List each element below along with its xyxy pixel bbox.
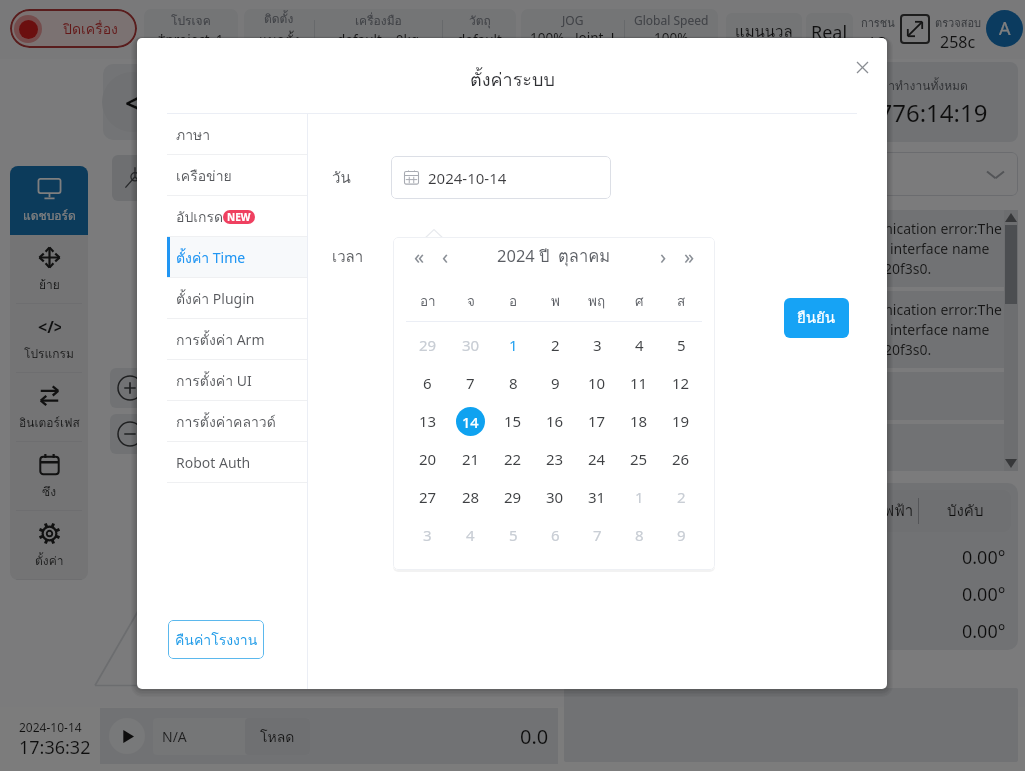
button[interactable]: Next year: [676, 243, 702, 269]
button[interactable]: อินเตอร์เฟส: [10, 373, 88, 442]
button[interactable]: 3: [406, 516, 449, 554]
button[interactable]: แมนนวล: [726, 13, 802, 51]
button[interactable]: 17: [576, 402, 618, 440]
button[interactable]: Play: [109, 718, 145, 754]
button[interactable]: Account: [986, 10, 1023, 47]
button[interactable]: 16: [534, 402, 576, 440]
staticText: 3: [423, 525, 432, 545]
button[interactable]: 13: [406, 402, 449, 440]
button[interactable]: Real: [806, 13, 853, 51]
button[interactable]: Previous year: [406, 243, 432, 269]
button[interactable]: 2024-10-14: [391, 156, 611, 199]
staticText: 5: [509, 525, 518, 545]
button[interactable]: ติดตั้ง: [244, 9, 516, 56]
button[interactable]: 30: [449, 326, 492, 364]
button[interactable]: 20: [406, 440, 449, 478]
button[interactable]: ตั้งค่า Time: [167, 237, 307, 278]
button[interactable]: JOG: [521, 9, 718, 56]
button[interactable]: ตั้งค่า Plugin: [167, 278, 307, 319]
button[interactable]: 18: [618, 402, 660, 440]
staticText: 6: [551, 525, 560, 545]
button[interactable]: 23: [534, 440, 576, 478]
button[interactable]: 28: [449, 478, 492, 516]
button[interactable]: อัปเกรด: [167, 196, 307, 237]
staticText: ย้าย: [39, 275, 60, 294]
button[interactable]: 7: [576, 516, 618, 554]
button[interactable]: 31: [576, 478, 618, 516]
button[interactable]: 19: [660, 402, 702, 440]
staticText: เวลา: [332, 245, 364, 269]
button[interactable]: 2: [660, 478, 702, 516]
staticText: จ: [467, 290, 475, 311]
button[interactable]: 29: [406, 326, 449, 364]
staticText: โหลด: [260, 726, 295, 748]
button[interactable]: 4: [618, 326, 660, 364]
button[interactable]: 3: [576, 326, 618, 364]
staticText: วัตถุ: [469, 11, 491, 30]
button[interactable]: 12: [660, 364, 702, 402]
button[interactable]: ย้าย: [10, 235, 88, 304]
button[interactable]: Robot Auth: [167, 442, 307, 483]
button[interactable]: 7: [449, 364, 492, 402]
button[interactable]: 6: [534, 516, 576, 554]
button[interactable]: [103, 64, 163, 140]
button[interactable]: โปรเจค: [144, 9, 238, 56]
button[interactable]: Back: [102, 72, 162, 132]
button[interactable]: 8: [492, 364, 534, 402]
button[interactable]: 11: [618, 364, 660, 402]
staticText: 17: [588, 411, 606, 431]
button[interactable]: Zoom in: [110, 368, 150, 408]
button[interactable]: กระแสไฟฟ้า: [827, 490, 918, 532]
button[interactable]: การตั้งค่าคลาวด์: [167, 401, 307, 442]
button[interactable]: ปิดเครื่อง: [10, 9, 137, 48]
staticText: is wlp0s20f3s0.: [832, 259, 932, 278]
button[interactable]: 1: [618, 478, 660, 516]
button[interactable]: 14: [449, 402, 492, 440]
button[interactable]: [820, 152, 1018, 196]
button[interactable]: ตั้งค่า: [10, 511, 88, 580]
button[interactable]: 9: [534, 364, 576, 402]
button[interactable]: เครือข่าย: [167, 155, 307, 196]
button[interactable]: </>: [10, 304, 88, 373]
button[interactable]: 21: [449, 440, 492, 478]
button[interactable]: 1: [492, 326, 534, 364]
button[interactable]: 4: [449, 516, 492, 554]
button[interactable]: 6: [406, 364, 449, 402]
button[interactable]: 29: [492, 478, 534, 516]
button[interactable]: ยืนยัน: [784, 298, 849, 338]
button[interactable]: การตั้งค่า UI: [167, 360, 307, 401]
button[interactable]: Fullscreen: [900, 14, 930, 44]
staticText: 21: [462, 449, 480, 469]
button[interactable]: 8: [618, 516, 660, 554]
button[interactable]: [112, 155, 158, 201]
button[interactable]: บังคับ: [919, 490, 1011, 532]
button[interactable]: 26: [660, 440, 702, 478]
button[interactable]: 5: [660, 326, 702, 364]
staticText: การตั้งค่า Arm: [176, 329, 265, 351]
staticText: 16: [546, 411, 564, 431]
button[interactable]: 15: [492, 402, 534, 440]
button[interactable]: 22: [492, 440, 534, 478]
button[interactable]: 27: [406, 478, 449, 516]
button[interactable]: คืนค่าโรงงาน: [168, 620, 264, 659]
button[interactable]: 25: [618, 440, 660, 478]
button[interactable]: Close: [851, 56, 873, 78]
button[interactable]: 10: [576, 364, 618, 402]
button[interactable]: การตั้งค่า Arm: [167, 319, 307, 360]
button[interactable]: แดชบอร์ด: [10, 166, 88, 235]
staticText: 30: [546, 487, 564, 507]
button[interactable]: Zoom out: [110, 414, 150, 454]
button[interactable]: ภาษา: [167, 114, 307, 155]
staticText: บังคับ: [947, 499, 984, 523]
staticText: ติดตั้ง: [264, 9, 294, 28]
button[interactable]: 9: [660, 516, 702, 554]
button[interactable]: Next month: [650, 243, 676, 269]
staticText: 2024-10-14: [428, 168, 507, 188]
button[interactable]: Previous month: [432, 243, 458, 269]
button[interactable]: 30: [534, 478, 576, 516]
button[interactable]: ซึง: [10, 442, 88, 511]
button[interactable]: 2: [534, 326, 576, 364]
button[interactable]: 5: [492, 516, 534, 554]
button[interactable]: 24: [576, 440, 618, 478]
button[interactable]: โหลด: [245, 718, 310, 755]
